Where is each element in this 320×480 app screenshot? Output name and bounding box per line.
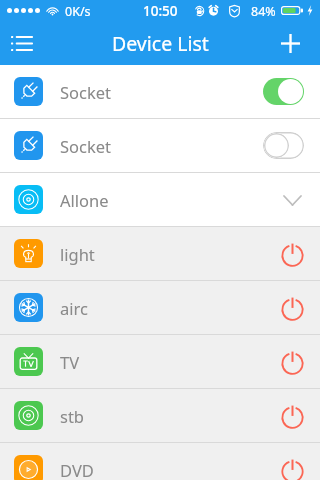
staticText: Device List [112, 30, 209, 57]
button[interactable]: airc [0, 281, 320, 334]
button[interactable]: Power [270, 394, 314, 438]
button[interactable]: TV [0, 335, 320, 388]
staticText: DVD [60, 459, 94, 480]
button[interactable]: DVD [0, 443, 320, 480]
button[interactable]: Power [270, 448, 314, 480]
button[interactable]: Toggle [263, 78, 304, 105]
staticText: Allone [60, 189, 109, 211]
button[interactable]: Socket [0, 119, 320, 172]
button[interactable]: stb [0, 389, 320, 442]
button[interactable]: Add device [270, 21, 320, 65]
staticText: Socket [60, 135, 112, 157]
button[interactable]: Toggle [263, 132, 304, 159]
staticText: 84% [251, 3, 276, 20]
button[interactable]: Power [270, 286, 314, 330]
staticText: 0K/s [65, 3, 91, 20]
button[interactable]: Allone [0, 173, 320, 226]
button[interactable]: Power [270, 340, 314, 384]
staticText: airc [60, 297, 88, 319]
button[interactable]: Power [270, 232, 314, 276]
staticText: stb [60, 405, 85, 427]
staticText: TV [60, 351, 80, 373]
button[interactable]: Menu [0, 21, 44, 65]
button[interactable]: Expand [270, 178, 314, 222]
button[interactable]: light [0, 227, 320, 280]
button[interactable]: Socket [0, 65, 320, 118]
staticText: Socket [60, 81, 112, 103]
staticText: light [60, 243, 95, 265]
staticText: 10:50 [143, 2, 178, 20]
